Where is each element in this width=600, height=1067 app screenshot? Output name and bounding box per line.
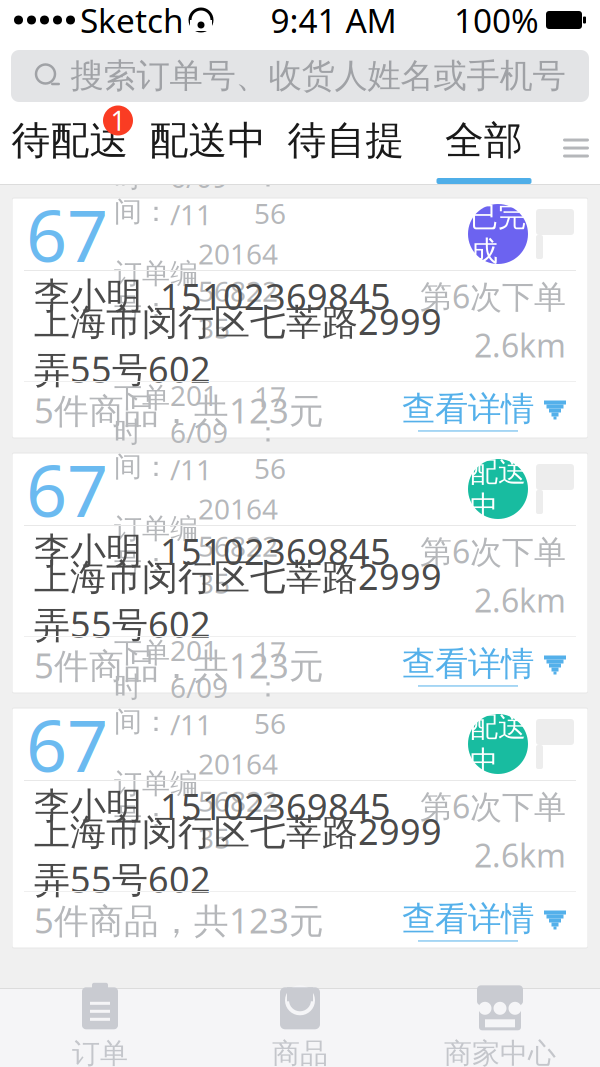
button[interactable]: 待自提 [277, 112, 415, 184]
staticText: 5件商品，共123元 [34, 897, 324, 943]
staticText: 2.6km [474, 324, 566, 366]
button[interactable]: 订单 [0, 989, 200, 1067]
staticText: 2016/09/11 [170, 121, 228, 233]
staticText: 待配送 [11, 117, 128, 164]
button[interactable]: 查看详情 [402, 635, 566, 694]
staticText: 17：56 [254, 378, 286, 487]
staticText: 67 [26, 441, 108, 537]
staticText: 商家中心 [444, 1036, 556, 1067]
staticText: 5件商品，共123元 [34, 387, 324, 433]
staticText: 下单时间： [114, 381, 170, 484]
staticText: 15102369845 [160, 527, 391, 575]
staticText: 1 [110, 103, 125, 138]
button[interactable]: More filters [553, 112, 599, 184]
button[interactable]: 全部 [415, 112, 553, 184]
staticText: 2.6km [474, 579, 566, 621]
staticText: 67 [26, 186, 108, 282]
staticText: 李小明 [34, 784, 142, 828]
staticText: 2016/09/11 [170, 631, 228, 743]
button[interactable]: 搜索订单号、收货人姓名或手机号 [11, 50, 589, 102]
staticText: 已完成 [470, 200, 526, 268]
staticText: 订单编号： [114, 256, 198, 325]
button[interactable]: 查看详情 [402, 380, 566, 439]
staticText: 201645682235 [198, 745, 278, 856]
staticText: 订单 [72, 1036, 128, 1067]
staticText: 下单时间： [114, 126, 170, 229]
button[interactable]: 商家中心 [400, 989, 600, 1067]
staticText: 上海市闵行区七莘路2999弄55号602 [34, 552, 442, 648]
staticText: 订单编号： [114, 766, 198, 835]
staticText: 李小明 [34, 274, 142, 318]
button[interactable]: 配送中 [139, 112, 277, 184]
staticText: 上海市闵行区七莘路2999弄55号602 [34, 297, 442, 393]
staticText: 李小明 [34, 529, 142, 573]
button[interactable]: 商品 [200, 989, 400, 1067]
staticText: 5件商品，共123元 [34, 642, 324, 688]
staticText: 17：56 [254, 633, 286, 742]
staticText: 查看详情 [402, 898, 534, 939]
staticText: 201645682235 [198, 490, 278, 601]
button[interactable]: 待配送 [1, 112, 139, 184]
staticText: 17：56 [254, 123, 286, 232]
staticText: 第6次下单 [420, 785, 566, 827]
staticText: 配送中 [470, 710, 526, 778]
staticText: 商品 [272, 1036, 328, 1067]
staticText: 全部 [445, 117, 523, 164]
staticText: 下单时间： [114, 636, 170, 739]
staticText: 配送中 [149, 117, 266, 164]
staticText: 100% [454, 0, 539, 42]
staticText: 2016/09/11 [170, 376, 228, 488]
button[interactable]: 查看详情 [402, 890, 566, 949]
staticText: 201645682235 [198, 235, 278, 346]
staticText: 搜索订单号、收货人姓名或手机号 [70, 55, 565, 96]
staticText: 9:41 AM [270, 0, 396, 42]
staticText: 待自提 [287, 117, 404, 164]
staticText: 2.6km [474, 834, 566, 876]
staticText: Sketch [80, 0, 184, 42]
staticText: 配送中 [470, 455, 526, 523]
staticText: 第6次下单 [420, 530, 566, 572]
staticText: 上海市闵行区七莘路2999弄55号602 [34, 807, 442, 903]
staticText: 订单编号： [114, 511, 198, 580]
staticText: 67 [26, 696, 108, 792]
staticText: 查看详情 [402, 643, 534, 684]
staticText: 15102369845 [160, 782, 391, 830]
staticText: 查看详情 [402, 388, 534, 429]
staticText: 第6次下单 [420, 275, 566, 317]
staticText: 15102369845 [160, 272, 391, 320]
